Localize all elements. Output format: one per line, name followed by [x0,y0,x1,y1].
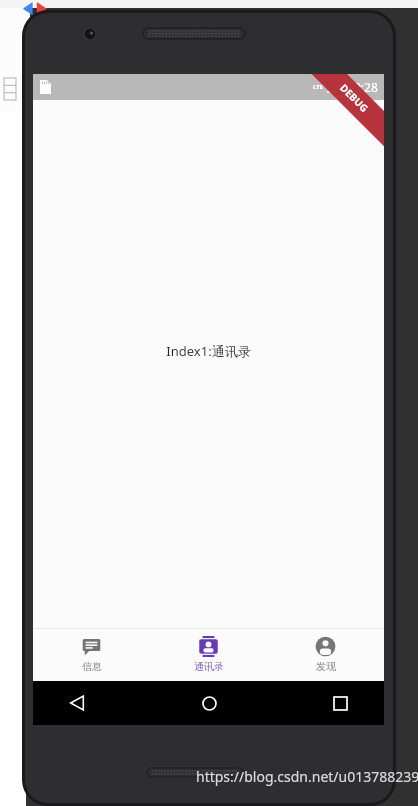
button[interactable]: 发现 [267,628,384,681]
button[interactable]: Home [189,683,229,723]
button[interactable]: Back [57,683,97,723]
staticText: 通讯录 [194,660,224,673]
button[interactable]: 信息 [33,628,150,681]
staticText: 发现 [316,660,336,673]
staticText: 信息 [82,660,102,673]
staticText: 9:28 [354,79,378,95]
staticText: LTE [313,83,324,91]
staticText: DEBUG [337,81,372,115]
button[interactable]: Recents [320,683,360,723]
button[interactable]: 通讯录 [150,628,267,681]
staticText: https://blog.csdn.net/u013788239 [196,767,418,786]
staticText: Index1:通讯录 [166,342,251,360]
